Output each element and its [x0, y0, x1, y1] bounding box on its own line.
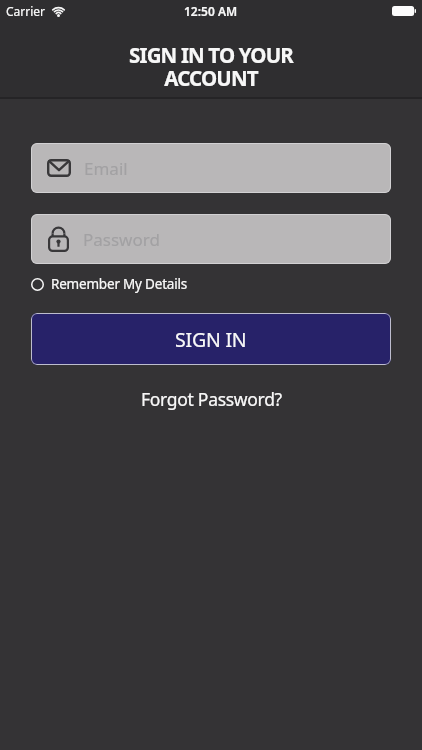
- button[interactable]: SIGN IN: [31, 313, 391, 365]
- staticText: SIGN IN: [175, 326, 247, 353]
- staticText: Remember My Details: [51, 275, 188, 293]
- staticText: Email: [84, 157, 128, 180]
- staticText: 12:50 AM: [184, 3, 238, 19]
- staticText: Carrier: [6, 3, 46, 19]
- staticText: Password: [83, 228, 160, 251]
- staticText: SIGN IN TO YOUR ACCOUNT: [0, 41, 422, 92]
- button[interactable]: Forgot Password?: [141, 387, 282, 411]
- button[interactable]: Email: [31, 143, 391, 193]
- button[interactable]: Remember My Details: [31, 275, 188, 293]
- button[interactable]: Password: [31, 214, 391, 264]
